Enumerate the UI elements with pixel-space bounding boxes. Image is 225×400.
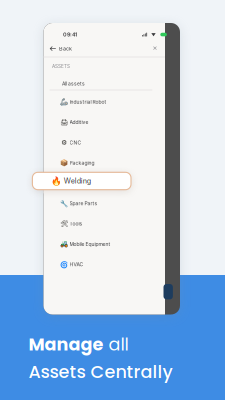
staticText: Assets Centrally bbox=[29, 360, 173, 384]
button[interactable]: 🦾 bbox=[43, 92, 165, 112]
staticText: CNC bbox=[69, 140, 81, 146]
staticText: HVAC bbox=[69, 261, 83, 267]
button[interactable]: ⚙ bbox=[43, 132, 165, 153]
staticText: 🌀 bbox=[60, 261, 68, 268]
staticText: Additive bbox=[69, 119, 88, 125]
staticText: Packaging bbox=[69, 160, 94, 166]
button[interactable]: Back bbox=[43, 42, 75, 56]
button[interactable]: Close bbox=[149, 41, 160, 55]
staticText: all bbox=[104, 332, 129, 357]
button[interactable]: 🖨 bbox=[43, 112, 165, 132]
staticText: 🔥 bbox=[51, 176, 62, 186]
staticText: Manage bbox=[29, 332, 104, 357]
button[interactable]: 🔧 bbox=[43, 193, 165, 214]
staticText: 🔧 bbox=[60, 200, 68, 207]
staticText: 09:41 bbox=[63, 31, 77, 38]
staticText: 🖨 bbox=[60, 118, 68, 126]
staticText: 🦾 bbox=[60, 98, 68, 106]
staticText: Back bbox=[59, 45, 72, 52]
staticText: Industrial Robot bbox=[69, 99, 106, 105]
button[interactable]: 📦 bbox=[43, 153, 165, 173]
staticText: 🚜 bbox=[60, 240, 68, 248]
staticText: ASSETS bbox=[52, 64, 70, 69]
staticText: All assets bbox=[62, 81, 85, 87]
button[interactable]: 🚜 bbox=[43, 234, 165, 254]
staticText: Welding bbox=[64, 177, 91, 185]
staticText: ✕ bbox=[152, 45, 157, 52]
staticText: Tools bbox=[69, 221, 82, 227]
staticText: 🛠 bbox=[60, 220, 68, 228]
staticText: ⚙ bbox=[61, 139, 67, 146]
staticText: 📦 bbox=[60, 159, 68, 167]
button[interactable]: 🛠 bbox=[43, 214, 165, 234]
staticText: Spare Parts bbox=[69, 200, 97, 206]
button[interactable]: 🌀 bbox=[43, 254, 165, 274]
staticText: Mobile Equipment bbox=[69, 241, 110, 247]
button[interactable]: All assets bbox=[43, 76, 165, 92]
button[interactable]: 🔥 bbox=[32, 172, 131, 190]
